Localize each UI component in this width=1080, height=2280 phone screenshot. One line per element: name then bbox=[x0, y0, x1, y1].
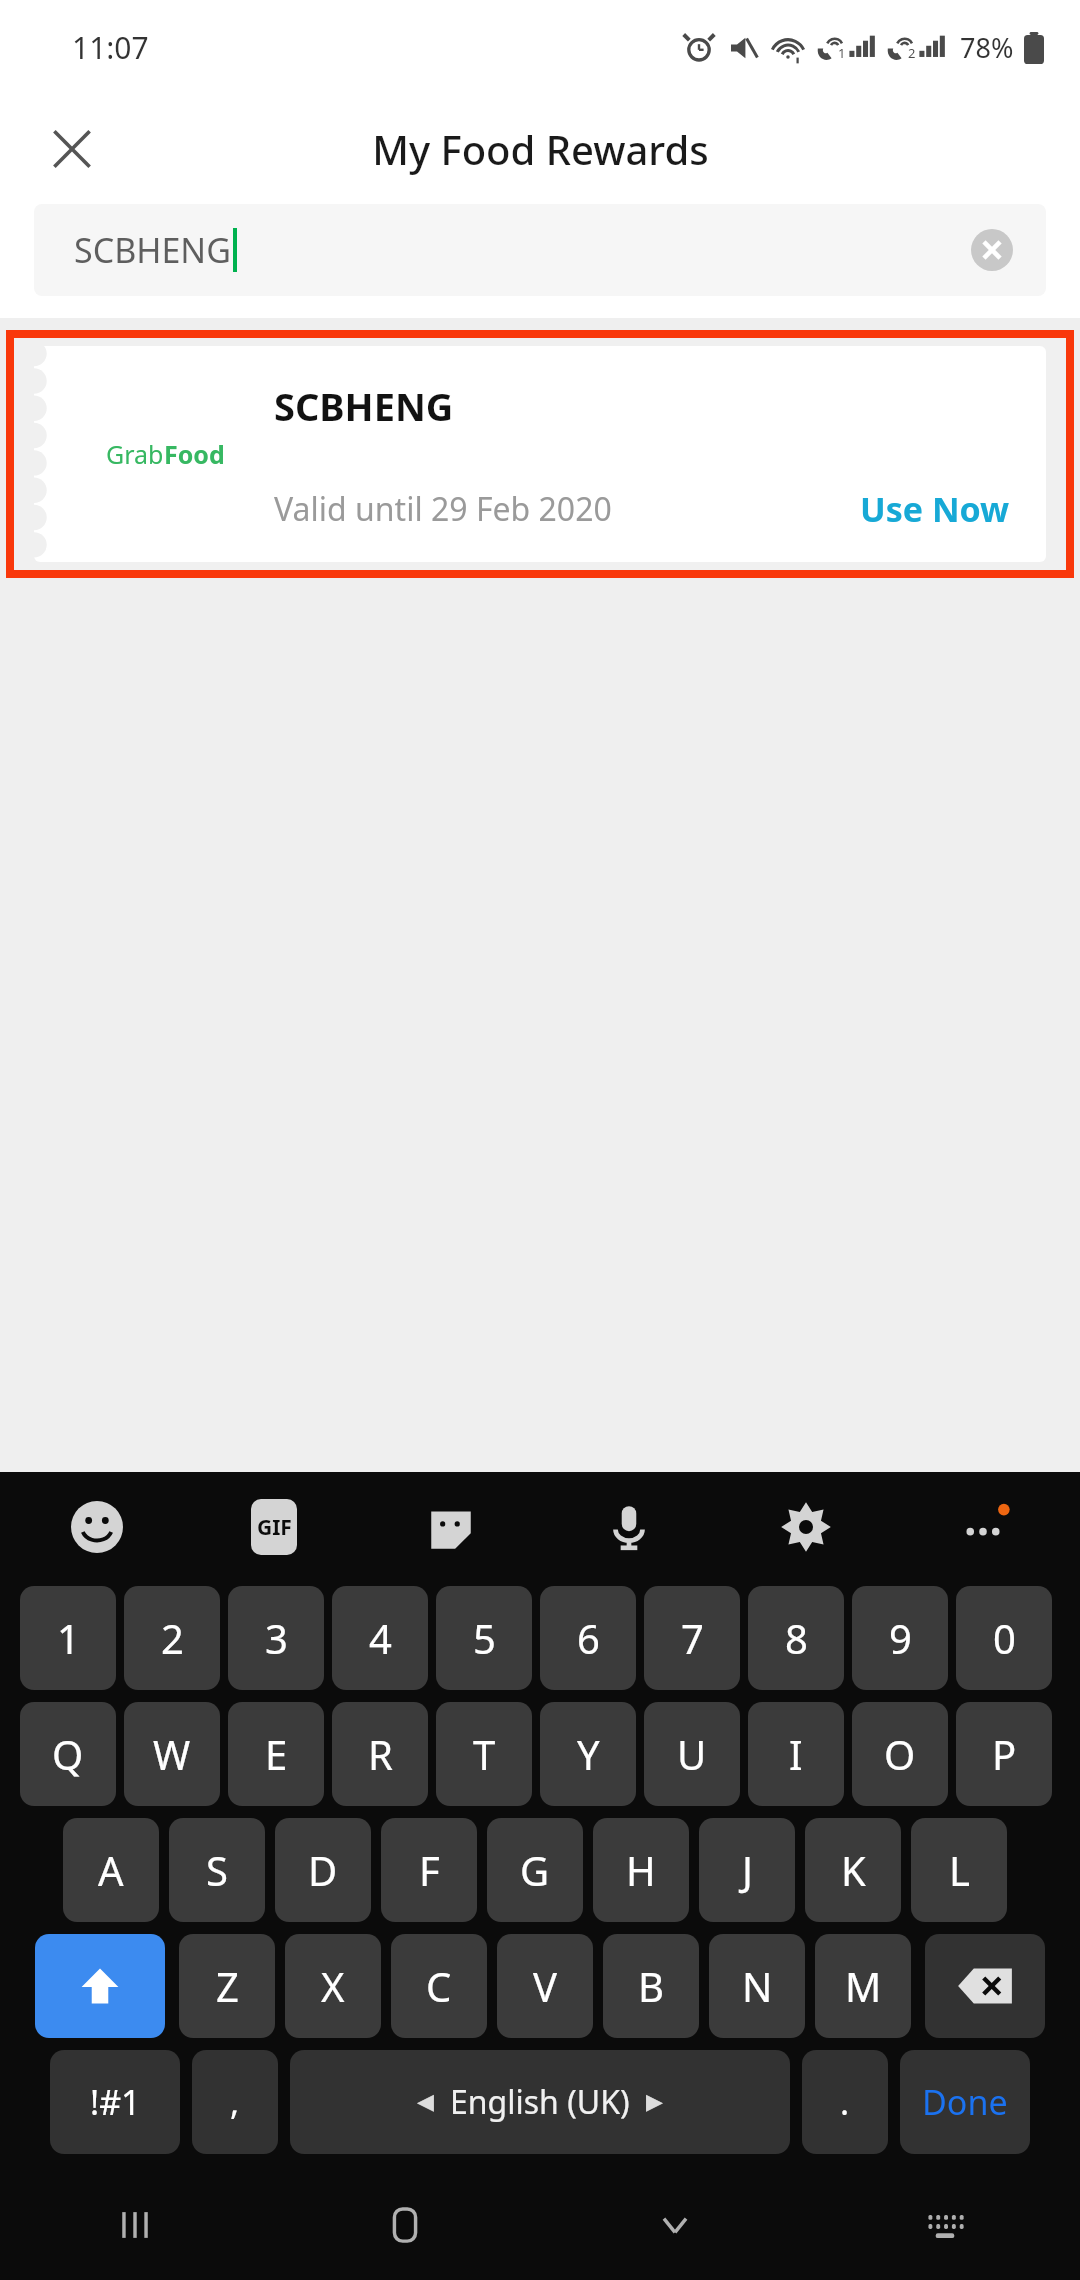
button[interactable]: Home bbox=[270, 2170, 540, 2280]
staticText: G bbox=[520, 1843, 550, 1897]
button[interactable]: F bbox=[381, 1818, 477, 1922]
staticText: I bbox=[789, 1727, 803, 1781]
button[interactable]: X bbox=[285, 1934, 381, 2038]
button[interactable]: N bbox=[709, 1934, 805, 2038]
button[interactable]: Keyboard settings bbox=[769, 1490, 843, 1564]
button[interactable]: I bbox=[748, 1702, 844, 1806]
staticText: X bbox=[321, 1959, 345, 2013]
button[interactable]: More options bbox=[946, 1490, 1020, 1564]
staticText: , bbox=[230, 2079, 240, 2125]
button[interactable]: Space, English (UK) bbox=[290, 2050, 790, 2154]
staticText: Food bbox=[164, 437, 225, 471]
button[interactable]: R bbox=[332, 1702, 428, 1806]
button[interactable]: 3 bbox=[228, 1586, 324, 1690]
button[interactable]: K bbox=[805, 1818, 901, 1922]
staticText: Done bbox=[922, 2079, 1008, 2125]
button[interactable]: M bbox=[815, 1934, 911, 2038]
staticText: B bbox=[638, 1959, 664, 2013]
button[interactable]: Y bbox=[540, 1702, 636, 1806]
button[interactable]: Clear text bbox=[960, 218, 1024, 282]
button[interactable]: Done bbox=[900, 2050, 1030, 2154]
button[interactable]: 8 bbox=[748, 1586, 844, 1690]
button[interactable]: Hide keyboard bbox=[540, 2170, 810, 2280]
button[interactable]: 0 bbox=[956, 1586, 1052, 1690]
button[interactable]: Z bbox=[179, 1934, 275, 2038]
staticText: L bbox=[949, 1843, 970, 1897]
staticText: Grab bbox=[106, 437, 164, 471]
button[interactable]: 6 bbox=[540, 1586, 636, 1690]
button[interactable]: J bbox=[699, 1818, 795, 1922]
button[interactable]: 5 bbox=[436, 1586, 532, 1690]
button[interactable]: Emoji bbox=[60, 1490, 134, 1564]
staticText: F bbox=[419, 1843, 440, 1897]
button[interactable]: S bbox=[169, 1818, 265, 1922]
button[interactable]: W bbox=[124, 1702, 220, 1806]
button[interactable]: T bbox=[436, 1702, 532, 1806]
staticText: C bbox=[426, 1959, 452, 2013]
staticText: 4 bbox=[369, 1611, 392, 1665]
staticText: H bbox=[626, 1843, 656, 1897]
button[interactable]: Grab bbox=[34, 346, 1046, 562]
staticText: 1 bbox=[838, 44, 846, 62]
staticText: 2 bbox=[908, 44, 916, 62]
staticText: T bbox=[473, 1727, 496, 1781]
button[interactable]: O bbox=[852, 1702, 948, 1806]
button[interactable]: SCBHENG bbox=[34, 204, 1046, 296]
button[interactable]: . bbox=[802, 2050, 888, 2154]
button[interactable]: , bbox=[192, 2050, 278, 2154]
staticText: K bbox=[841, 1843, 866, 1897]
staticText: R bbox=[368, 1727, 393, 1781]
staticText: P bbox=[992, 1727, 1017, 1781]
staticText: 7 bbox=[681, 1611, 704, 1665]
button[interactable]: E bbox=[228, 1702, 324, 1806]
button[interactable]: Shift bbox=[35, 1934, 165, 2038]
staticText: !#1 bbox=[90, 2079, 141, 2125]
staticText: SCBHENG bbox=[74, 227, 231, 273]
staticText: Valid until 29 Feb 2020 bbox=[274, 487, 612, 531]
button[interactable]: 1 bbox=[20, 1586, 116, 1690]
staticText: S bbox=[206, 1843, 228, 1897]
button[interactable]: !#1 bbox=[50, 2050, 180, 2154]
button[interactable]: 4 bbox=[332, 1586, 428, 1690]
button[interactable]: Close bbox=[34, 111, 110, 187]
button[interactable]: Use Now bbox=[860, 486, 1010, 532]
staticText: J bbox=[742, 1843, 753, 1897]
button[interactable]: G bbox=[487, 1818, 583, 1922]
staticText: 0 bbox=[993, 1611, 1016, 1665]
button[interactable]: P bbox=[956, 1702, 1052, 1806]
staticText: 3 bbox=[265, 1611, 288, 1665]
staticText: 5 bbox=[473, 1611, 496, 1665]
button[interactable]: Backspace bbox=[925, 1934, 1045, 2038]
button[interactable]: A bbox=[63, 1818, 159, 1922]
button[interactable]: 2 bbox=[124, 1586, 220, 1690]
staticText: A bbox=[98, 1843, 124, 1897]
staticText: 6 bbox=[577, 1611, 600, 1665]
staticText: O bbox=[884, 1727, 916, 1781]
button[interactable]: 9 bbox=[852, 1586, 948, 1690]
button[interactable]: U bbox=[644, 1702, 740, 1806]
button[interactable]: C bbox=[391, 1934, 487, 2038]
staticText: 1 bbox=[57, 1611, 80, 1665]
button[interactable]: Q bbox=[20, 1702, 116, 1806]
button[interactable]: Voice input bbox=[592, 1490, 666, 1564]
button[interactable]: B bbox=[603, 1934, 699, 2038]
staticText: D bbox=[308, 1843, 338, 1897]
button[interactable]: H bbox=[593, 1818, 689, 1922]
staticText: Y bbox=[577, 1727, 600, 1781]
button[interactable]: 7 bbox=[644, 1586, 740, 1690]
staticText: 2 bbox=[161, 1611, 184, 1665]
staticText: W bbox=[153, 1727, 191, 1781]
button[interactable]: Stickers bbox=[414, 1490, 488, 1564]
staticText: 11:07 bbox=[72, 27, 149, 68]
button[interactable]: GIF bbox=[237, 1490, 311, 1564]
button[interactable]: Recent apps bbox=[0, 2170, 270, 2280]
button[interactable]: Change keyboard bbox=[810, 2170, 1080, 2280]
button[interactable]: V bbox=[497, 1934, 593, 2038]
staticText: GIF bbox=[257, 1513, 292, 1542]
staticText: 8 bbox=[785, 1611, 808, 1665]
staticText: ◀ bbox=[417, 2089, 434, 2115]
staticText: U bbox=[677, 1727, 707, 1781]
button[interactable]: D bbox=[275, 1818, 371, 1922]
staticText: Use Now bbox=[860, 486, 1010, 532]
button[interactable]: L bbox=[911, 1818, 1007, 1922]
